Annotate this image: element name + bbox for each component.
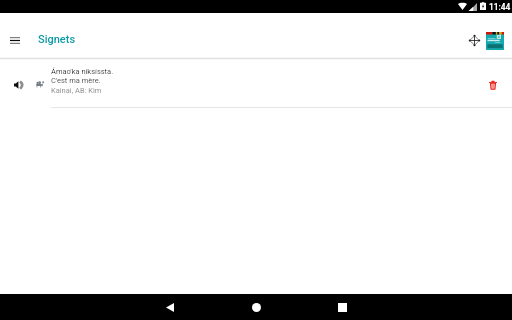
staticText: 11:44 [489, 2, 511, 12]
button[interactable]: Play audio [9, 75, 29, 95]
button[interactable]: Recent apps [299, 294, 385, 320]
staticText: Kainai, AB: Kim [51, 86, 102, 95]
button[interactable]: Back [127, 294, 213, 320]
button[interactable]: Book cover [486, 32, 504, 50]
button[interactable]: Delete [483, 75, 503, 95]
staticText: C'est ma mère. [51, 76, 101, 85]
staticText: Signets [38, 33, 76, 46]
staticText: Ámao'ka niksíssta. [51, 67, 114, 76]
button[interactable]: Play audio [0, 60, 512, 107]
button[interactable]: Home [213, 294, 299, 320]
button[interactable]: Navigation menu [5, 30, 25, 50]
button[interactable]: Move [464, 30, 484, 50]
